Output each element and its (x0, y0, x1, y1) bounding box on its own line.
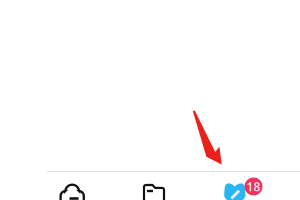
staticText: 18 (246, 178, 260, 194)
button[interactable]: iCloud Drive (42, 181, 106, 200)
button[interactable]: Shared (203, 181, 267, 200)
button[interactable]: Files (122, 181, 186, 200)
